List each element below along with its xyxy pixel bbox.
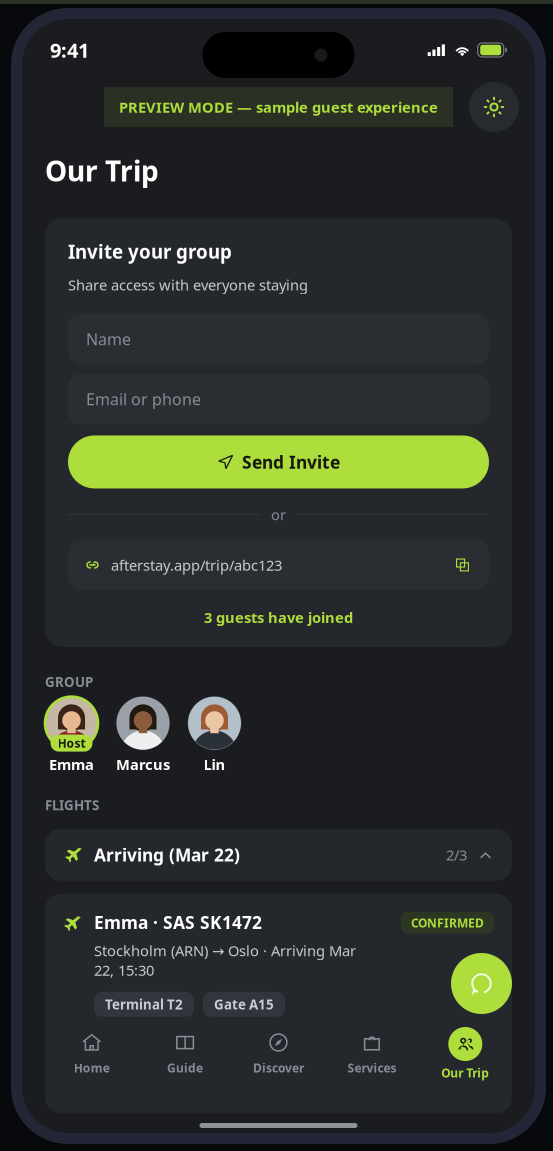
button[interactable]: Chat <box>451 953 512 1014</box>
staticText: CONFIRMED <box>411 915 484 931</box>
button[interactable]: Lin <box>188 696 241 774</box>
staticText: afterstay.app/trip/abc123 <box>111 555 282 575</box>
button[interactable]: Arriving (Mar 22) <box>22 829 535 881</box>
staticText: Our Trip <box>441 1065 489 1081</box>
staticText: Email or phone <box>86 388 201 409</box>
staticText: Stockholm (ARN) → Oslo · Arriving Mar 22… <box>94 941 356 980</box>
staticText: Gate A15 <box>214 995 274 1013</box>
button[interactable]: Marcus <box>116 696 169 774</box>
staticText: Lin <box>203 755 225 774</box>
staticText: FLIGHTS <box>45 796 99 814</box>
button[interactable]: Our Trip <box>419 1018 512 1097</box>
staticText: Host <box>57 735 85 751</box>
staticText: Marcus <box>116 755 170 774</box>
button[interactable]: Services <box>325 1018 419 1097</box>
button[interactable]: Send Invite <box>68 435 489 488</box>
staticText: Marcus · LH 882 <box>94 1047 229 1070</box>
staticText: Emma <box>49 755 94 774</box>
button[interactable]: Toggle appearance <box>469 82 519 132</box>
staticText: 9:41 <box>50 37 89 63</box>
button[interactable]: Home <box>45 1018 138 1097</box>
staticText: 2/3 <box>446 845 467 865</box>
button[interactable]: Copy link <box>452 554 473 575</box>
staticText: Name <box>86 328 131 349</box>
staticText: Services <box>347 1060 396 1076</box>
button[interactable]: Host <box>45 696 98 774</box>
staticText: Send Invite <box>242 450 340 473</box>
staticText: or <box>271 505 286 524</box>
staticText: Arriving (Mar 22) <box>94 843 240 866</box>
staticText: Share access with everyone staying <box>68 275 308 294</box>
staticText: Emma · SAS SK1472 <box>94 911 262 934</box>
staticText: Home <box>74 1060 110 1076</box>
staticText: 3 guests have joined <box>204 607 353 627</box>
button[interactable]: Guide <box>138 1018 232 1097</box>
staticText: Discover <box>253 1060 304 1076</box>
button[interactable]: Discover <box>232 1018 325 1097</box>
staticText: Terminal T2 <box>105 995 183 1013</box>
staticText: PREVIEW MODE — sample guest experience <box>119 97 438 117</box>
staticText: Invite your group <box>68 239 232 264</box>
staticText: Our Trip <box>45 152 159 189</box>
staticText: GROUP <box>45 673 93 691</box>
staticText: Guide <box>167 1060 203 1076</box>
